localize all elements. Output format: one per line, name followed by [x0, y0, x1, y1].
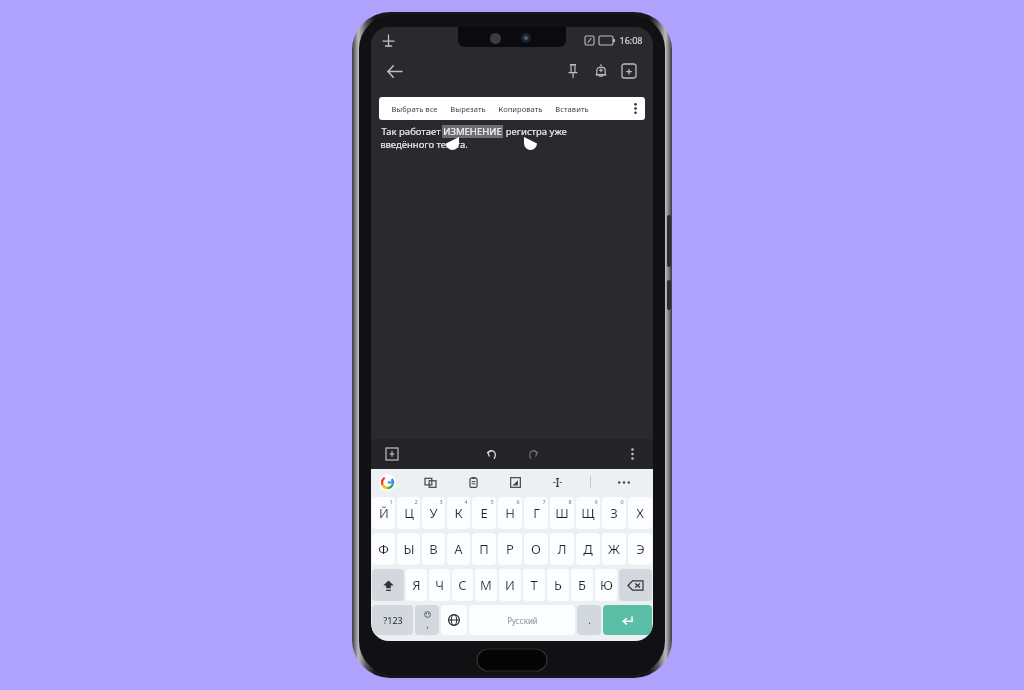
button[interactable]: Б	[571, 569, 593, 601]
button[interactable]: Г	[524, 497, 548, 529]
button[interactable]: Google	[379, 474, 396, 491]
staticText: 2	[414, 498, 418, 505]
button[interactable]: Т	[523, 569, 545, 601]
staticText: Т	[530, 576, 538, 594]
button[interactable]: Add	[381, 443, 403, 465]
staticText: Д	[583, 540, 593, 558]
button[interactable]: ?123	[372, 605, 413, 635]
staticText: 6	[516, 498, 520, 505]
button[interactable]: Archive	[615, 57, 643, 85]
staticText: 0	[620, 498, 624, 505]
staticText: Выбрать все	[391, 104, 438, 114]
staticText: Копировать	[498, 104, 543, 114]
button[interactable]: Р	[498, 533, 522, 565]
button[interactable]: М	[475, 569, 497, 601]
staticText: Н	[505, 504, 515, 522]
button[interactable]: Ч	[429, 569, 450, 601]
staticText: У	[429, 504, 438, 522]
staticText: Ч	[435, 576, 444, 594]
staticText: Х	[636, 504, 644, 522]
staticText: Л	[557, 540, 567, 558]
button[interactable]: Э	[628, 533, 652, 565]
button[interactable]: Н	[498, 497, 522, 529]
staticText: 8	[568, 498, 572, 505]
button[interactable]: Backspace	[619, 569, 652, 601]
button[interactable]: З	[602, 497, 626, 529]
button[interactable]: Выбрать все	[385, 97, 444, 120]
button[interactable]: А	[447, 533, 470, 565]
button[interactable]: More options	[625, 97, 645, 120]
staticText: регистра уже	[503, 125, 567, 138]
button[interactable]: Comma and emoji	[415, 605, 439, 635]
staticText: ?123	[383, 614, 403, 626]
staticText: Русский	[507, 615, 538, 626]
button[interactable]: Л	[550, 533, 574, 565]
button[interactable]: More	[615, 473, 633, 491]
staticText: Г	[533, 504, 540, 522]
button[interactable]: Translate	[421, 473, 439, 491]
button[interactable]: Й	[372, 497, 395, 529]
button[interactable]: П	[472, 533, 496, 565]
staticText: С	[458, 576, 467, 594]
staticText: В	[429, 540, 438, 558]
button[interactable]: Ф	[372, 533, 395, 565]
button[interactable]: Enter	[603, 605, 652, 635]
button[interactable]: Ь	[547, 569, 569, 601]
button[interactable]: Е	[472, 497, 496, 529]
button[interactable]: Щ	[576, 497, 600, 529]
button[interactable]: Change language	[441, 605, 467, 635]
button[interactable]: Вставить	[549, 97, 595, 120]
staticText: введённого текста.	[380, 138, 468, 151]
button[interactable]: О	[524, 533, 548, 565]
button[interactable]: Я	[406, 569, 427, 601]
button[interactable]: У	[422, 497, 445, 529]
staticText: .	[588, 613, 591, 627]
button[interactable]: Redo	[521, 442, 545, 466]
button[interactable]: .	[577, 605, 601, 635]
staticText: К	[454, 504, 463, 522]
button[interactable]: Ж	[602, 533, 626, 565]
staticText: Ш	[555, 504, 569, 522]
staticText: 16:08	[619, 34, 643, 46]
button[interactable]: Text editing	[548, 473, 566, 491]
staticText: 3	[439, 498, 443, 505]
button[interactable]: Ю	[595, 569, 617, 601]
staticText: 9	[594, 498, 598, 505]
staticText: О	[531, 540, 541, 558]
staticText: З	[610, 504, 618, 522]
button[interactable]: Add reminder	[587, 57, 615, 85]
staticText: И	[505, 576, 515, 594]
staticText: П	[479, 540, 489, 558]
staticText: 1	[389, 498, 393, 505]
button[interactable]: К	[447, 497, 470, 529]
button[interactable]: Ш	[550, 497, 574, 529]
staticText: А	[454, 540, 463, 558]
button[interactable]: Pin	[559, 57, 587, 85]
button[interactable]: Русский	[469, 605, 575, 635]
button[interactable]: Ц	[397, 497, 420, 529]
button[interactable]: Clipboard	[464, 473, 482, 491]
button[interactable]: С	[452, 569, 473, 601]
staticText: Р	[506, 540, 514, 558]
button[interactable]: More options	[621, 443, 643, 465]
button[interactable]: Ы	[397, 533, 420, 565]
button[interactable]: Shift	[372, 569, 404, 601]
staticText: Б	[578, 576, 586, 594]
staticText: Ц	[404, 504, 414, 522]
button[interactable]: Х	[628, 497, 652, 529]
button[interactable]: И	[499, 569, 521, 601]
staticText: Ф	[378, 540, 389, 558]
button[interactable]: Вырезать	[444, 97, 492, 120]
staticText: Щ	[581, 504, 595, 522]
button[interactable]: Sticker	[506, 473, 524, 491]
button[interactable]: Копировать	[492, 97, 549, 120]
staticText: Э	[636, 540, 645, 558]
button[interactable]: Undo	[479, 442, 503, 466]
button[interactable]: Back	[381, 58, 407, 84]
staticText: ,	[426, 618, 429, 630]
staticText: 5	[490, 498, 494, 505]
button[interactable]: Д	[576, 533, 600, 565]
button[interactable]: В	[422, 533, 445, 565]
staticText: 4	[464, 498, 468, 505]
staticText: ИЗМЕНЕНИЕ	[443, 125, 502, 138]
